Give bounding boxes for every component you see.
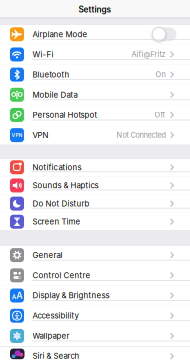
staticText: Siri & Search <box>32 351 79 360</box>
button[interactable]: Bluetooth <box>0 64 190 85</box>
staticText: Aifi@Fritz <box>132 50 166 59</box>
staticText: Accessibility <box>32 311 78 320</box>
staticText: Settings <box>78 4 111 14</box>
staticText: Mobile Data <box>32 90 77 99</box>
button[interactable]: VPN <box>0 125 190 145</box>
staticText: Control Centre <box>32 271 90 280</box>
staticText: Wi-Fi <box>32 50 53 59</box>
staticText: On <box>156 70 166 79</box>
staticText: Personal Hotspot <box>32 110 97 120</box>
staticText: Do Not Disturb <box>32 199 89 208</box>
button[interactable]: Personal Hotspot <box>0 105 190 125</box>
button[interactable]: Notifications <box>0 158 190 176</box>
button[interactable]: Siri & Search <box>0 346 190 360</box>
staticText: VPN <box>32 130 48 140</box>
staticText: General <box>32 250 62 260</box>
button[interactable]: Airplane Mode <box>0 24 190 44</box>
button[interactable]: Wi-Fi <box>0 44 190 65</box>
staticText: A <box>12 293 16 301</box>
staticText: Airplane Mode <box>32 29 87 39</box>
staticText: Off <box>155 110 166 119</box>
staticText: Display & Brightness <box>32 291 109 300</box>
staticText: VPN <box>11 132 22 138</box>
staticText: Sounds & Haptics <box>32 181 98 190</box>
button[interactable]: Sounds & Haptics <box>0 176 190 194</box>
staticText: A <box>16 290 22 301</box>
staticText: Screen Time <box>32 217 80 226</box>
staticText: Notifications <box>32 162 81 172</box>
button[interactable]: Do Not Disturb <box>0 194 190 213</box>
staticText: Wallpaper <box>32 331 69 341</box>
button[interactable]: General <box>0 245 190 265</box>
button[interactable]: Control Centre <box>0 265 190 285</box>
button[interactable]: Accessibility <box>0 306 190 326</box>
button[interactable]: Screen Time <box>0 213 190 231</box>
staticText: Not Connected <box>117 131 166 140</box>
button[interactable]: Wallpaper <box>0 326 190 346</box>
staticText: Bluetooth <box>32 70 69 79</box>
button[interactable]: A <box>0 285 190 306</box>
button[interactable]: Mobile Data <box>0 85 190 105</box>
